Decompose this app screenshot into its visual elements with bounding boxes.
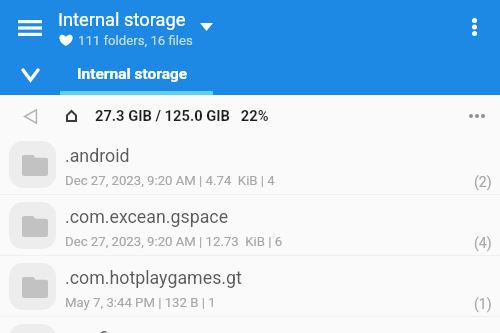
button[interactable]: More options (455, 8, 493, 46)
button[interactable]: .com.excean.gspace (0, 195, 500, 255)
button[interactable]: Menu (6, 5, 54, 51)
staticText: Internal storage (77, 65, 188, 83)
button[interactable]: .android (0, 134, 500, 194)
staticText: 27.3 GIB / 125.0 GIB 22% (95, 107, 269, 124)
button[interactable]: .com.hotplaygames.gt (0, 256, 500, 316)
button[interactable]: .config (0, 317, 500, 333)
staticText: May 7, 3:44 PM | 132 B | 1 (65, 295, 216, 310)
staticText: (2) (474, 174, 492, 190)
button[interactable]: Options (460, 99, 494, 133)
staticText: Internal storage (58, 9, 186, 30)
staticText: .com.hotplaygames.gt (65, 267, 242, 288)
staticText: .config (65, 328, 119, 333)
button[interactable]: Select storage (194, 15, 218, 39)
button[interactable]: Expand tabs (8, 52, 52, 98)
staticText: Dec 27, 2023, 9:20 AM | 12.73 KiB | 6 (65, 234, 283, 249)
staticText: (4) (474, 235, 492, 251)
staticText: 111 folders, 16 files (78, 33, 193, 48)
staticText: .com.excean.gspace (65, 206, 229, 227)
button[interactable]: Home (58, 103, 84, 129)
button[interactable]: Back (16, 102, 44, 130)
staticText: .android (65, 145, 130, 166)
button[interactable]: Internal storage (60, 49, 213, 95)
staticText: (1) (474, 296, 492, 312)
staticText: Dec 27, 2023, 9:20 AM | 4.74 KiB | 4 (65, 173, 275, 188)
